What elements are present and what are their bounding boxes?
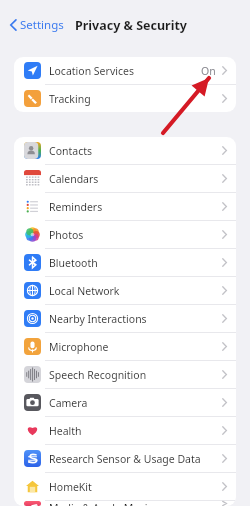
staticText: Speech Recognition bbox=[49, 368, 147, 382]
button[interactable]: Photos bbox=[14, 221, 236, 248]
staticText: Local Network bbox=[49, 284, 120, 298]
button[interactable]: Nearby Interactions bbox=[14, 305, 236, 332]
button[interactable]: Speech Recognition bbox=[14, 361, 236, 388]
button[interactable]: Microphone bbox=[14, 333, 236, 360]
staticText: Bluetooth bbox=[49, 256, 98, 270]
staticText: Reminders bbox=[49, 200, 103, 214]
staticText: Calendars bbox=[49, 172, 99, 186]
staticText: HomeKit bbox=[49, 480, 92, 494]
button[interactable]: Local Network bbox=[14, 277, 236, 304]
staticText: Photos bbox=[49, 228, 84, 242]
button[interactable]: Camera bbox=[14, 389, 236, 416]
button[interactable]: Contacts bbox=[14, 137, 236, 164]
button[interactable]: Research Sensor & Usage Data bbox=[14, 445, 236, 472]
button[interactable]: Health bbox=[14, 417, 236, 444]
button[interactable]: Settings bbox=[8, 15, 66, 35]
staticText: Camera bbox=[49, 396, 88, 410]
button[interactable]: Media & Apple Music bbox=[14, 501, 236, 506]
button[interactable]: Tracking bbox=[14, 85, 236, 112]
staticText: Health bbox=[49, 424, 82, 438]
staticText: Location Services bbox=[49, 64, 134, 78]
staticText: Microphone bbox=[49, 340, 109, 354]
button[interactable]: Location Services bbox=[14, 57, 236, 84]
staticText: Privacy & Security bbox=[75, 17, 187, 34]
staticText: Settings bbox=[20, 17, 64, 33]
staticText: Media & Apple Music bbox=[49, 501, 153, 506]
button[interactable]: Bluetooth bbox=[14, 249, 236, 276]
staticText: Nearby Interactions bbox=[49, 312, 147, 326]
staticText: Contacts bbox=[49, 144, 93, 158]
button[interactable]: Calendars bbox=[14, 165, 236, 192]
staticText: On bbox=[201, 64, 216, 78]
staticText: Research Sensor & Usage Data bbox=[49, 452, 201, 466]
button[interactable]: HomeKit bbox=[14, 473, 236, 500]
staticText: Tracking bbox=[49, 92, 91, 106]
button[interactable]: Reminders bbox=[14, 193, 236, 220]
